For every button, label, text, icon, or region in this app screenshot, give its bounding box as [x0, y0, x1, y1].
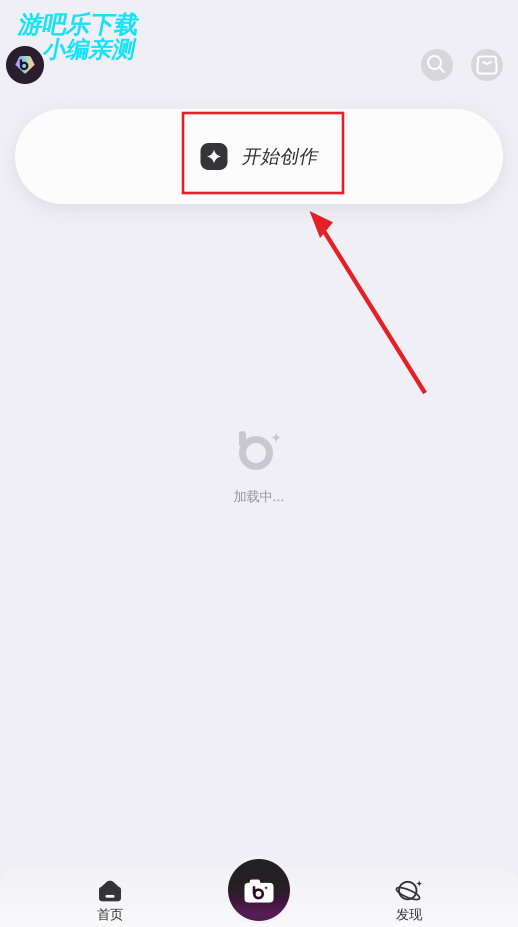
- staticText: 发现: [396, 906, 422, 923]
- staticText: 首页: [97, 906, 123, 923]
- button[interactable]: Messages: [471, 49, 503, 81]
- button[interactable]: Search: [421, 49, 453, 81]
- staticText: 开始创作: [241, 145, 317, 168]
- button[interactable]: 首页: [55, 876, 165, 927]
- staticText: 加载中...: [233, 487, 284, 505]
- button[interactable]: Profile: [6, 46, 44, 84]
- button[interactable]: Camera: [225, 856, 293, 924]
- staticText: 游吧乐下载: [17, 10, 137, 40]
- button[interactable]: 发现: [354, 876, 464, 927]
- button[interactable]: 开始创作: [15, 109, 503, 204]
- staticText: 小编亲测: [42, 36, 134, 64]
